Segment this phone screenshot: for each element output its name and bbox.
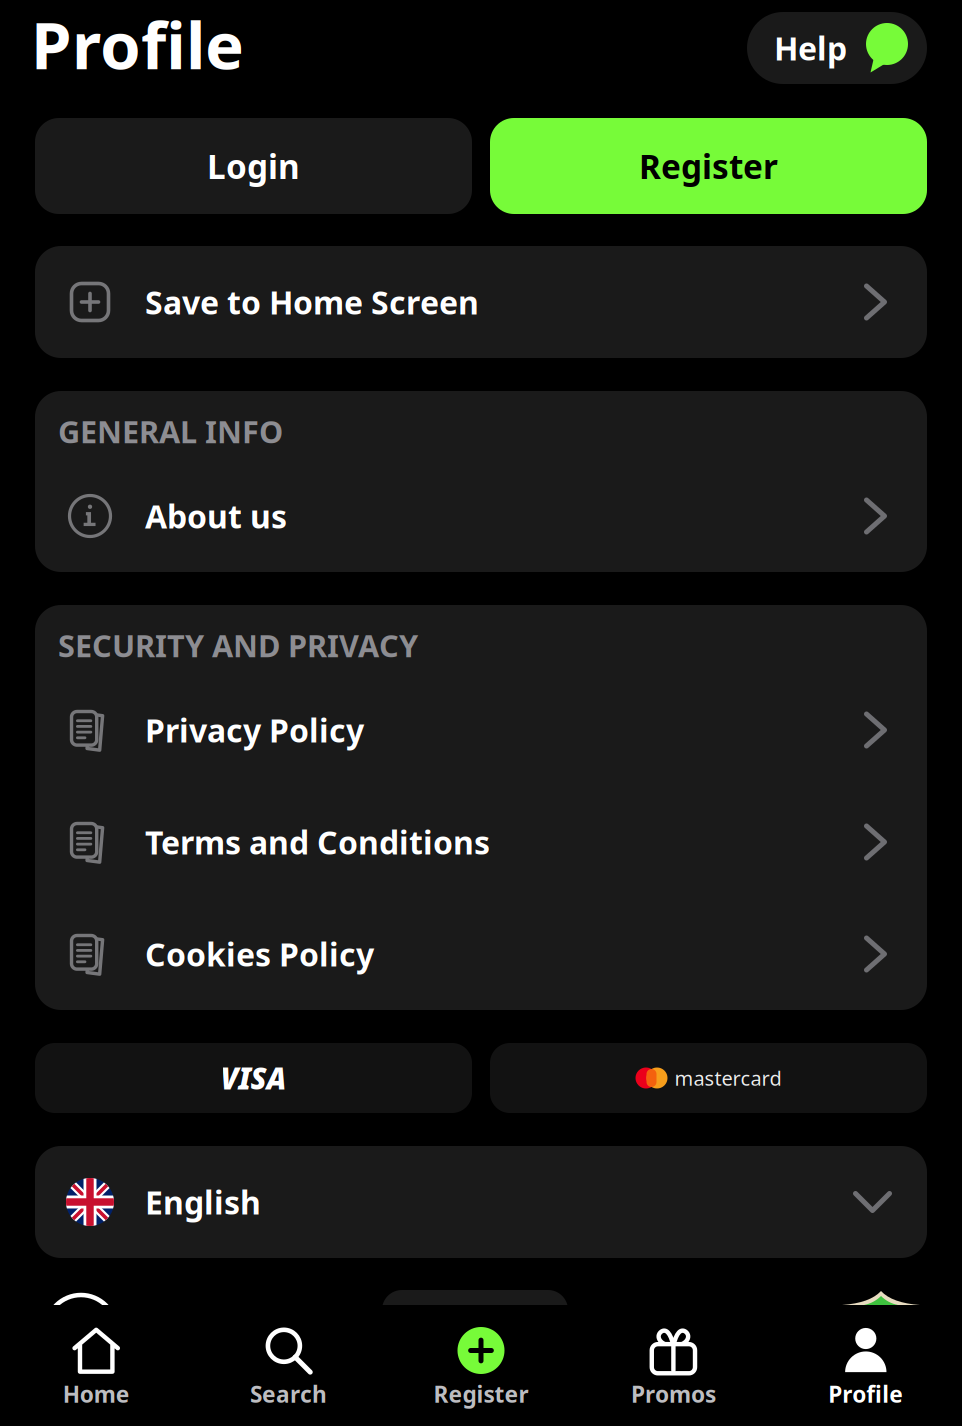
staticText: Terms and Conditions bbox=[145, 821, 490, 863]
button[interactable]: Login bbox=[35, 118, 472, 214]
staticText: English bbox=[145, 1181, 261, 1223]
staticText: VISA bbox=[220, 1058, 286, 1097]
staticText: Profile bbox=[31, 1, 244, 87]
staticText: Home bbox=[63, 1379, 130, 1409]
button[interactable]: Profile bbox=[770, 1327, 962, 1409]
staticText: Login bbox=[207, 144, 300, 188]
staticText: About us bbox=[145, 495, 287, 537]
staticText: Cookies Policy bbox=[145, 933, 374, 975]
button[interactable]: Terms and Conditions bbox=[35, 786, 927, 898]
staticText: Help bbox=[774, 27, 847, 69]
staticText: GENERAL INFO bbox=[58, 411, 283, 452]
staticText: mastercard bbox=[674, 1065, 781, 1091]
button[interactable]: Search bbox=[192, 1327, 385, 1409]
staticText: Register bbox=[639, 144, 778, 188]
button[interactable]: Promos bbox=[577, 1327, 770, 1409]
staticText: Profile bbox=[828, 1379, 903, 1409]
button[interactable]: Cookies Policy bbox=[35, 898, 927, 1010]
staticText: Save to Home Screen bbox=[145, 281, 479, 323]
button[interactable]: Home bbox=[0, 1327, 192, 1409]
button[interactable]: About us bbox=[35, 460, 927, 572]
staticText: Privacy Policy bbox=[145, 709, 364, 751]
button[interactable]: Register bbox=[490, 118, 927, 214]
button[interactable]: Register bbox=[385, 1327, 577, 1409]
button[interactable]: English bbox=[35, 1146, 927, 1258]
staticText: Register bbox=[433, 1379, 528, 1409]
button[interactable]: Mastercard bbox=[490, 1043, 927, 1113]
staticText: Promos bbox=[631, 1379, 716, 1409]
staticText: SECURITY AND PRIVACY bbox=[58, 625, 418, 666]
button[interactable]: Visa bbox=[35, 1043, 472, 1113]
button[interactable]: Help bbox=[747, 12, 927, 84]
button[interactable]: Save to Home Screen bbox=[35, 246, 927, 358]
staticText: Search bbox=[250, 1379, 327, 1409]
button[interactable]: Privacy Policy bbox=[35, 674, 927, 786]
